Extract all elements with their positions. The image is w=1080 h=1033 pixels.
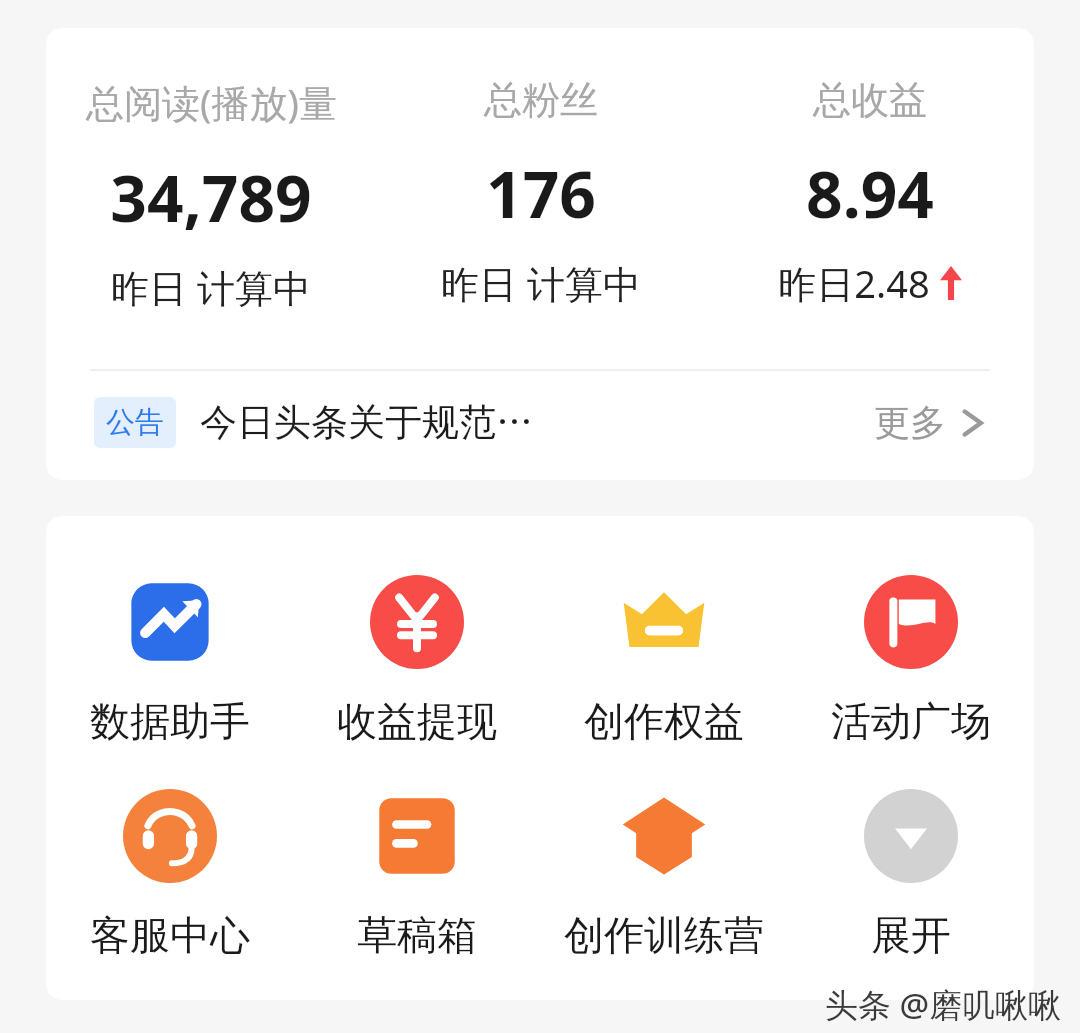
staticText: 草稿箱 [357, 910, 477, 960]
button[interactable]: 创作权益 [540, 574, 787, 746]
staticText: 8.94 [806, 150, 934, 237]
staticText: 34,789 [110, 154, 312, 241]
button[interactable]: 数据助手 [46, 574, 293, 746]
button[interactable]: 客服中心 [46, 788, 293, 960]
staticText: 创作权益 [584, 696, 744, 746]
staticText: 更多 [874, 400, 946, 445]
staticText: 总粉丝 [484, 76, 598, 124]
staticText: 头条 @磨叽啾啾 [825, 982, 1062, 1027]
button[interactable]: 总阅读(播放)量 [46, 76, 376, 313]
staticText: 客服中心 [90, 910, 250, 960]
staticText: 公告 [106, 404, 164, 441]
staticText: 活动广场 [831, 696, 991, 746]
staticText: 展开 [871, 910, 951, 960]
button[interactable]: 创作训练营 [540, 788, 787, 960]
staticText: 昨日 计算中 [441, 257, 641, 309]
button[interactable]: 草稿箱 [293, 788, 540, 960]
button[interactable]: 展开 [787, 788, 1034, 960]
button[interactable]: 公告 [46, 371, 1034, 474]
staticText: 昨日2.48 [778, 257, 930, 309]
button[interactable]: 收益提现 [293, 574, 540, 746]
staticText: 176 [486, 150, 596, 237]
button[interactable]: 活动广场 [787, 574, 1034, 746]
staticText: 总阅读(播放)量 [86, 76, 337, 128]
staticText: 总收益 [813, 76, 927, 124]
staticText: 今日头条关于规范重点流... [200, 399, 537, 446]
staticText: 创作训练营 [564, 910, 764, 960]
staticText: 数据助手 [90, 696, 250, 746]
button[interactable]: 总收益 [705, 76, 1034, 309]
staticText: 昨日 计算中 [111, 261, 311, 313]
staticText: 收益提现 [337, 696, 497, 746]
button[interactable]: 总粉丝 [376, 76, 705, 309]
